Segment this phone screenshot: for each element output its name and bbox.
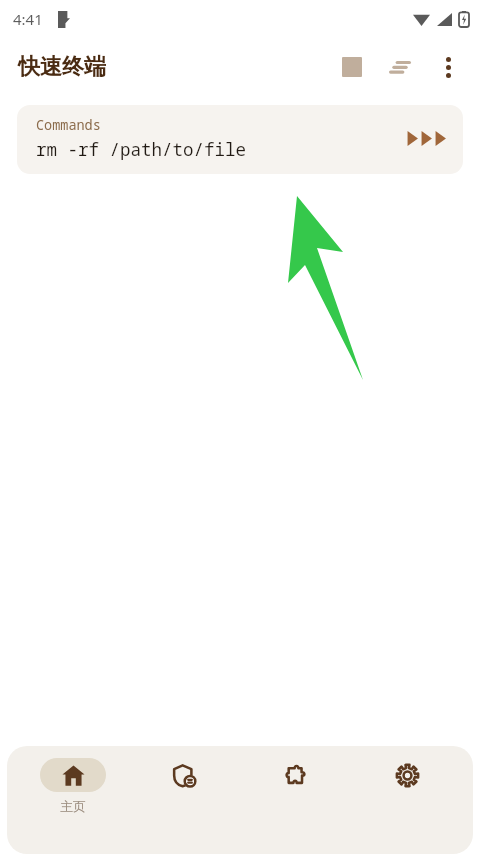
staticText: Commands <box>36 116 101 134</box>
button[interactable]: 安全 <box>139 756 229 792</box>
button[interactable]: 主页 <box>28 756 118 814</box>
button[interactable]: 设置 <box>362 756 452 792</box>
staticText: rm -rf /path/to/file <box>36 137 246 161</box>
staticText: 快速终端 <box>18 53 106 81</box>
button[interactable]: Run all commands <box>406 131 447 146</box>
button[interactable]: 插件 <box>251 756 341 792</box>
staticText: 主页 <box>60 798 86 814</box>
button[interactable]: Stop <box>328 43 376 91</box>
button[interactable]: Commands <box>17 105 463 174</box>
button[interactable]: Sort <box>376 43 424 91</box>
staticText: 4:41 <box>13 9 43 29</box>
button[interactable]: More options <box>424 43 472 91</box>
